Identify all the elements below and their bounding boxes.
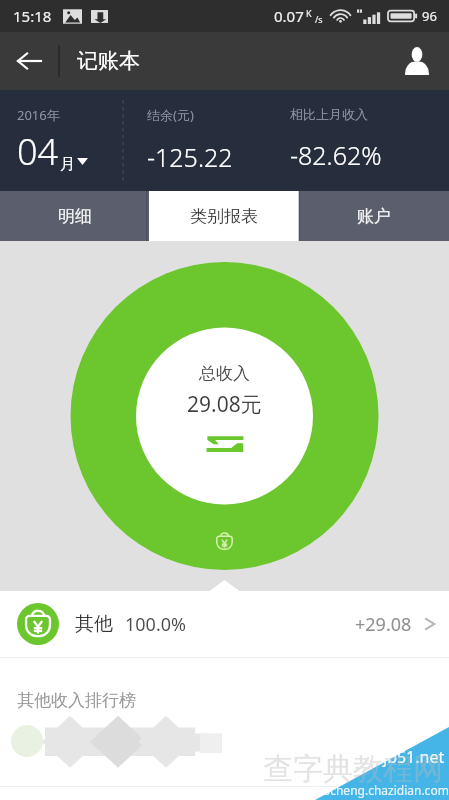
button[interactable]: 账户 xyxy=(299,191,449,241)
button[interactable]: 明细 xyxy=(0,191,149,241)
staticText: 账户 xyxy=(357,206,391,227)
staticText: jb51.net xyxy=(383,746,445,768)
staticText: -125.22 xyxy=(147,140,233,174)
staticText: 15:18 xyxy=(13,6,52,26)
staticText: 0.07 xyxy=(274,6,304,26)
staticText: 96 xyxy=(422,7,437,25)
staticText: 其他收入排行榜 xyxy=(17,690,136,711)
staticText: 100.0% xyxy=(125,612,186,637)
staticText: 04 xyxy=(17,127,59,176)
staticText: jiaocheng.chazidian.com xyxy=(310,782,449,798)
staticText: 记账本 xyxy=(77,48,140,74)
staticText: K xyxy=(306,7,312,19)
staticText: 类别报表 xyxy=(190,206,258,227)
staticText: 总收入 xyxy=(199,363,250,384)
staticText: 查字典教程网 xyxy=(263,750,443,788)
staticText: 结余(元) xyxy=(147,106,194,124)
staticText: 相比上月收入 xyxy=(290,106,368,122)
staticText: 29.08元 xyxy=(187,390,262,419)
button[interactable]: 其他 xyxy=(0,591,449,657)
button[interactable]: 类别报表 xyxy=(149,191,299,241)
staticText: +29.08 xyxy=(355,612,412,637)
staticText: 2016年 xyxy=(17,106,60,124)
staticText: 明细 xyxy=(58,206,92,227)
button[interactable]: Profile xyxy=(395,32,439,90)
staticText: 月 xyxy=(60,155,75,174)
button[interactable]: Back xyxy=(0,32,58,90)
staticText: -82.62% xyxy=(290,138,382,172)
staticText: /s xyxy=(315,13,323,25)
staticText: 其他 xyxy=(75,612,113,636)
